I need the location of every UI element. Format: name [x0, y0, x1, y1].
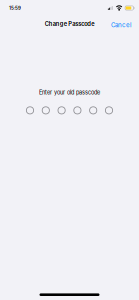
staticText: Enter your old passcode [39, 89, 100, 96]
button[interactable]: Cancel [104, 15, 139, 33]
staticText: 15:59 [9, 5, 21, 11]
staticText: Passcode [68, 20, 94, 27]
staticText: Cancel [111, 21, 131, 29]
staticText: Change [45, 20, 67, 27]
